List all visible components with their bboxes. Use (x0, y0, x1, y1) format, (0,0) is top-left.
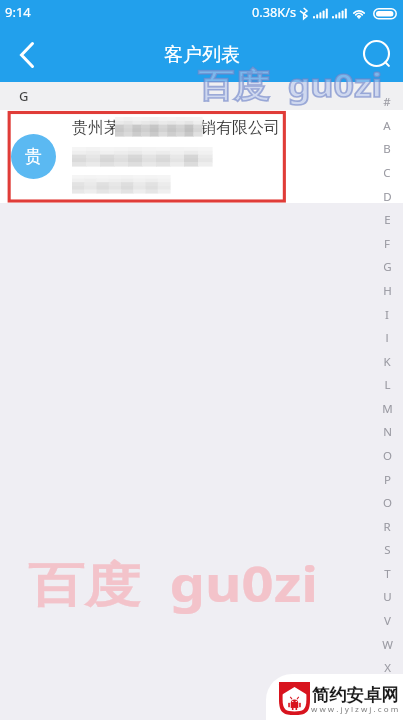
staticText: L (384, 377, 391, 389)
staticText: 百度 gu0zi (198, 62, 383, 107)
button[interactable]: E (377, 212, 397, 224)
staticText: Q (383, 495, 392, 507)
staticText: S (384, 542, 391, 554)
button[interactable]: 贵 (0, 110, 403, 203)
button[interactable]: V (377, 613, 397, 625)
staticText: 销有限公司 (200, 118, 280, 138)
staticText: X (384, 660, 391, 672)
button[interactable]: Back (0, 27, 54, 81)
staticText: # (383, 94, 391, 106)
staticText: O (383, 448, 392, 460)
staticText: 0.38K/s (252, 4, 297, 21)
staticText: 百度 gu0zi (28, 551, 318, 617)
staticText: 贵 (25, 146, 42, 167)
button[interactable]: Search (349, 27, 403, 81)
button[interactable]: B (377, 141, 397, 153)
button[interactable]: M (377, 401, 397, 413)
button[interactable]: X (377, 660, 397, 672)
button[interactable]: D (377, 189, 397, 201)
button[interactable]: A (377, 118, 397, 130)
button[interactable]: U (377, 589, 397, 601)
button[interactable]: C (377, 165, 397, 177)
button[interactable]: W (377, 637, 397, 649)
button[interactable]: F (377, 236, 397, 248)
button[interactable]: T (377, 566, 397, 578)
staticText: W (382, 637, 393, 649)
staticText: w w w . j y l z w j . c o m (311, 704, 399, 714)
staticText: B (383, 141, 391, 153)
staticText: 贵州茅 (72, 118, 120, 138)
staticText: N (383, 424, 392, 436)
button[interactable]: S (377, 542, 397, 554)
button[interactable]: P (377, 472, 397, 484)
staticText: D (383, 189, 392, 201)
staticText: 客户列表 (164, 43, 240, 67)
staticText: A (383, 118, 391, 130)
staticText: T (384, 566, 391, 578)
staticText: E (384, 212, 391, 224)
staticText: Y (384, 684, 391, 696)
staticText: F (384, 236, 390, 248)
staticText: Z (384, 707, 391, 719)
button[interactable]: J (377, 330, 397, 342)
staticText: C (383, 165, 391, 177)
staticText: P (384, 472, 391, 484)
staticText: R (383, 519, 391, 531)
staticText: H (383, 283, 392, 295)
staticText: 百度 gu0zi (198, 62, 383, 107)
button[interactable]: G (377, 259, 397, 271)
staticText: M (382, 401, 393, 413)
staticText: I (385, 307, 389, 319)
staticText: J (385, 330, 389, 342)
button[interactable]: H (377, 283, 397, 295)
staticText: V (384, 613, 391, 625)
button[interactable]: I (377, 307, 397, 319)
button[interactable]: L (377, 377, 397, 389)
button[interactable]: K (377, 354, 397, 366)
button[interactable]: # (377, 94, 397, 106)
staticText: G (383, 259, 392, 271)
staticText: U (383, 589, 392, 601)
staticText: G (19, 87, 29, 105)
staticText: 简约安卓网 (312, 684, 399, 706)
staticText: K (383, 354, 391, 366)
button[interactable]: O (377, 448, 397, 460)
button[interactable]: Z (377, 707, 397, 719)
staticText: 9:14 (5, 3, 31, 21)
button[interactable]: N (377, 424, 397, 436)
button[interactable]: Y (377, 684, 397, 696)
button[interactable]: Q (377, 495, 397, 507)
button[interactable]: R (377, 519, 397, 531)
